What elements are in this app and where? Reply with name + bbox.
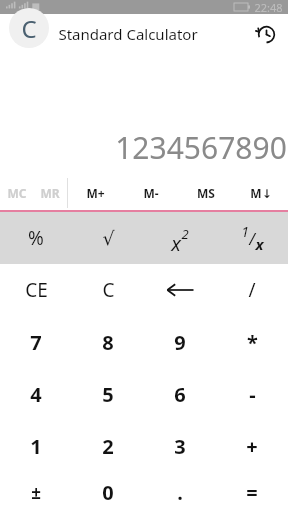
- button[interactable]: *: [216, 316, 288, 368]
- staticText: /: [248, 277, 256, 303]
- staticText: x: [171, 230, 181, 257]
- button[interactable]: MC: [0, 176, 33, 210]
- button[interactable]: History: [250, 18, 282, 50]
- staticText: MS: [197, 185, 215, 201]
- button[interactable]: 3: [144, 420, 216, 472]
- staticText: 5: [102, 381, 114, 408]
- button[interactable]: √: [72, 212, 144, 264]
- button[interactable]: M-: [123, 176, 178, 210]
- staticText: √: [102, 227, 115, 249]
- button[interactable]: App logo: [9, 8, 49, 48]
- staticText: 4: [30, 381, 42, 408]
- button[interactable]: CE: [0, 264, 72, 316]
- staticText: M+: [86, 185, 105, 201]
- staticText: %: [28, 225, 44, 251]
- staticText: *: [247, 329, 258, 356]
- button[interactable]: 2: [72, 420, 144, 472]
- button[interactable]: 0: [72, 472, 144, 512]
- button[interactable]: 4: [0, 368, 72, 420]
- staticText: =: [246, 479, 258, 506]
- staticText: /: [249, 228, 255, 250]
- staticText: M↓: [250, 185, 272, 201]
- staticText: 7: [30, 329, 42, 356]
- button[interactable]: 5: [72, 368, 144, 420]
- staticText: 9: [174, 329, 186, 356]
- button[interactable]: 1234567890: [0, 54, 288, 176]
- staticText: 3: [174, 433, 186, 460]
- button[interactable]: MR: [33, 176, 67, 210]
- staticText: 2: [181, 225, 189, 243]
- staticText: C: [102, 277, 115, 303]
- staticText: 1234567890: [115, 127, 287, 168]
- staticText: 6: [174, 381, 186, 408]
- staticText: MR: [40, 185, 60, 201]
- staticText: M-: [143, 185, 159, 201]
- staticText: x: [255, 234, 264, 254]
- staticText: 22:48: [254, 0, 283, 14]
- staticText: C: [21, 12, 37, 45]
- button[interactable]: .: [144, 472, 216, 512]
- staticText: -: [249, 381, 256, 408]
- button[interactable]: 7: [0, 316, 72, 368]
- staticText: ±: [31, 481, 41, 504]
- button[interactable]: /: [216, 264, 288, 316]
- button[interactable]: Backspace: [144, 264, 216, 316]
- button[interactable]: 6: [144, 368, 216, 420]
- button[interactable]: 8: [72, 316, 144, 368]
- button[interactable]: M↓: [233, 176, 288, 210]
- button[interactable]: MS: [178, 176, 233, 210]
- button[interactable]: C: [72, 264, 144, 316]
- staticText: 1: [241, 222, 249, 241]
- button[interactable]: =: [216, 472, 288, 512]
- button[interactable]: %: [0, 212, 72, 264]
- staticText: Standard Calculator: [58, 24, 198, 44]
- button[interactable]: 1: [0, 420, 72, 472]
- button[interactable]: 9: [144, 316, 216, 368]
- button[interactable]: ±: [0, 472, 72, 512]
- staticText: .: [177, 479, 183, 506]
- staticText: CE: [25, 277, 48, 303]
- staticText: MC: [7, 185, 27, 201]
- staticText: 1: [30, 433, 42, 460]
- button[interactable]: 1: [216, 212, 288, 264]
- staticText: +: [246, 433, 258, 460]
- button[interactable]: x: [144, 212, 216, 264]
- staticText: 2: [102, 433, 114, 460]
- staticText: 0: [102, 479, 114, 506]
- button[interactable]: -: [216, 368, 288, 420]
- button[interactable]: +: [216, 420, 288, 472]
- staticText: 8: [102, 329, 114, 356]
- button[interactable]: M+: [68, 176, 123, 210]
